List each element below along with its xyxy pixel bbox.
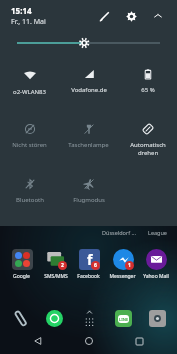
button[interactable]: Camera — [145, 306, 169, 330]
staticText: SMS/MMS — [44, 273, 68, 280]
button[interactable]: 2 — [39, 248, 72, 280]
staticText: o2-WLAN83 — [13, 88, 46, 96]
button[interactable]: Edit — [94, 6, 114, 26]
staticText: Nicht stören — [12, 141, 47, 149]
staticText: League — [148, 229, 167, 236]
staticText: Google — [13, 273, 30, 280]
button[interactable]: Phone — [8, 306, 32, 330]
staticText: LINE — [119, 317, 129, 322]
button[interactable]: Taschenlampe — [59, 115, 118, 170]
button[interactable]: Settings — [121, 6, 141, 26]
staticText: 15:14 — [11, 5, 32, 16]
staticText: Düsseldorf ... — [102, 229, 136, 236]
staticText: Flugmodus — [73, 196, 105, 204]
staticText: 2 — [61, 262, 64, 269]
staticText: Yahoo Mail — [143, 273, 169, 280]
button[interactable]: Nicht stören — [0, 115, 59, 170]
button[interactable]: Recent apps — [126, 328, 152, 354]
button[interactable]: Vodafone.de — [59, 60, 118, 115]
button[interactable]: Collapse — [148, 6, 168, 26]
button[interactable]: o2-WLAN83 — [0, 60, 59, 115]
button[interactable]: Home — [76, 328, 102, 354]
button[interactable]: App drawer — [77, 306, 101, 330]
button[interactable]: Yahoo Mail — [139, 248, 172, 280]
button[interactable]: LINE — [111, 306, 135, 330]
staticText: 65 % — [141, 86, 155, 94]
staticText: Facebook — [77, 273, 100, 280]
button[interactable]: f — [72, 248, 105, 280]
staticText: Fr., 11. Mai — [11, 17, 46, 27]
staticText: Bluetooth — [16, 196, 44, 204]
staticText: Automatisch drehen — [130, 141, 166, 157]
staticText: f — [87, 250, 93, 269]
button[interactable]: WhatsApp — [42, 306, 66, 330]
button[interactable]: 65 % — [118, 60, 177, 115]
staticText: 1 — [128, 262, 131, 269]
staticText: Taschenlampe — [68, 141, 109, 149]
staticText: 6 — [94, 262, 97, 269]
button[interactable]: 1 — [106, 248, 139, 280]
button[interactable]: Bluetooth — [0, 170, 59, 225]
button[interactable]: Back — [25, 328, 51, 354]
button[interactable]: Flugmodus — [59, 170, 118, 225]
staticText: Vodafone.de — [71, 86, 107, 94]
button[interactable]: Google — [5, 248, 38, 280]
staticText: Messenger — [109, 273, 136, 280]
button[interactable]: Automatisch drehen — [118, 115, 177, 170]
button[interactable]: Brightness — [0, 32, 177, 54]
